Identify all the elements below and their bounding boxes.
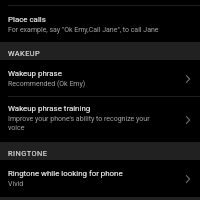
button[interactable]: Wakeup phrase training xyxy=(0,97,200,142)
staticText: Ringtone while looking for phone xyxy=(8,169,123,178)
staticText: Place calls xyxy=(8,15,46,24)
staticText: WAKEUP xyxy=(8,49,41,58)
other: Open Wakeup phrase xyxy=(183,73,193,85)
button[interactable]: Wakeup phrase xyxy=(0,60,200,96)
staticText: Improve your phone's ability to recogniz… xyxy=(8,115,166,132)
staticText: For example, say "Ok Emy,Call Jane", to … xyxy=(8,26,159,34)
staticText: RINGTONE xyxy=(8,149,48,158)
staticText: Vivid xyxy=(8,180,24,188)
other: Open Wakeup phrase training xyxy=(183,114,193,126)
staticText: Wakeup phrase training xyxy=(8,104,91,113)
button[interactable]: Ringtone while looking for phone xyxy=(0,160,200,196)
staticText: Wakeup phrase xyxy=(8,69,62,78)
staticText: Recommended (Ok Emy) xyxy=(8,80,86,88)
other: Open Ringtone while looking for phone xyxy=(183,173,193,185)
button[interactable]: Place calls xyxy=(0,6,200,42)
